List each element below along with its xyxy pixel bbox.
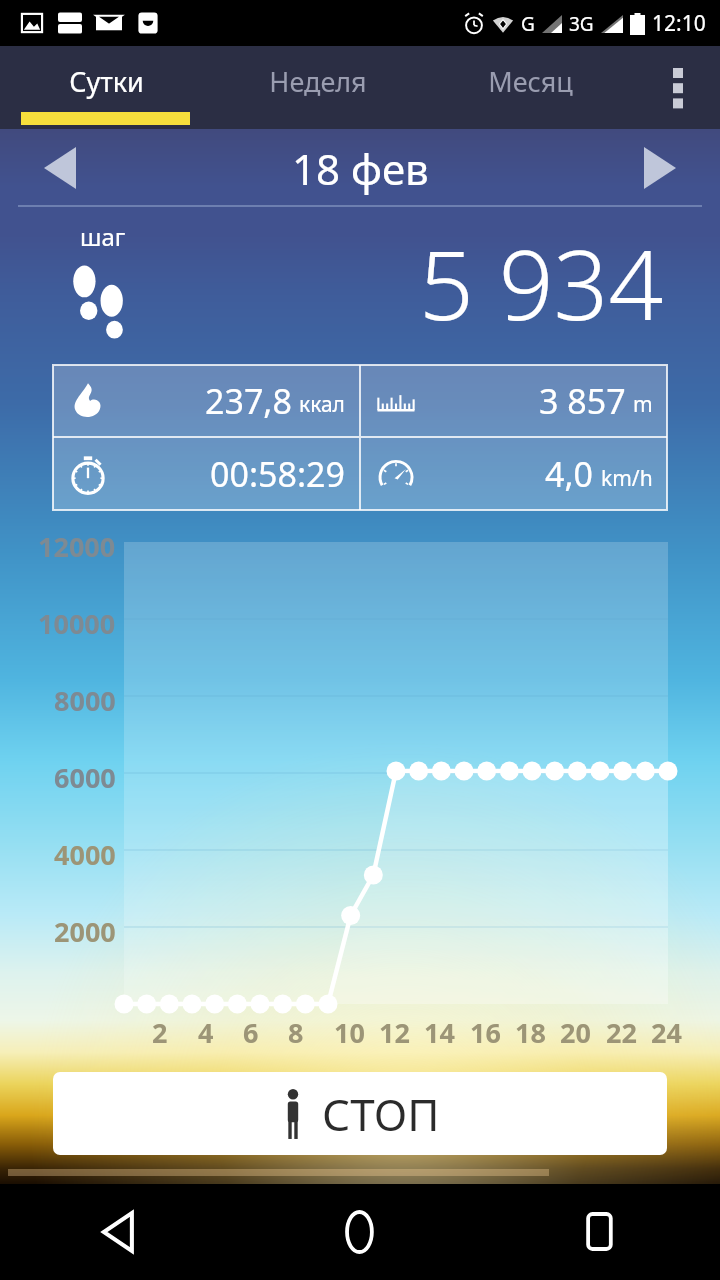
button[interactable]: СТОП xyxy=(53,1072,667,1155)
staticText: 237,8 xyxy=(205,378,292,424)
button[interactable]: More options xyxy=(636,46,720,129)
staticText: ккал xyxy=(299,390,345,419)
staticText: 10 xyxy=(334,1014,365,1051)
button[interactable]: Home xyxy=(240,1184,480,1280)
staticText: 12:10 xyxy=(652,9,706,38)
staticText: 22 xyxy=(606,1014,637,1051)
staticText: 18 xyxy=(515,1014,546,1051)
button[interactable]: Back xyxy=(0,1184,240,1280)
button[interactable]: 237,8 xyxy=(53,365,359,436)
staticText: 8000 xyxy=(54,682,116,719)
staticText: m xyxy=(633,390,653,419)
staticText: G xyxy=(521,11,535,37)
staticText: Неделя xyxy=(269,63,367,100)
staticText: 4000 xyxy=(54,836,116,873)
staticText: Сутки xyxy=(69,63,144,100)
staticText: 4 xyxy=(198,1014,214,1051)
button[interactable]: Next day xyxy=(630,138,690,198)
staticText: 10000 xyxy=(38,605,116,642)
button[interactable]: Previous day xyxy=(30,138,90,198)
staticText: 6000 xyxy=(54,759,116,796)
staticText: 6 xyxy=(243,1014,259,1051)
staticText: 16 xyxy=(470,1014,501,1051)
staticText: 2000 xyxy=(54,913,116,950)
staticText: 24 xyxy=(651,1014,682,1051)
button[interactable]: 00:58:29 xyxy=(53,438,359,510)
staticText: Месяц xyxy=(488,63,573,100)
button[interactable]: 3 857 xyxy=(361,365,667,436)
staticText: 14 xyxy=(424,1014,455,1051)
staticText: 3 857 xyxy=(539,378,626,424)
staticText: СТОП xyxy=(322,1084,440,1144)
button[interactable]: Recents xyxy=(480,1184,720,1280)
staticText: шаг xyxy=(80,220,126,253)
staticText: 8 xyxy=(288,1014,304,1051)
staticText: 18 фев xyxy=(292,140,429,197)
button[interactable]: Неделя xyxy=(212,46,424,129)
staticText: 00:58:29 xyxy=(210,451,345,497)
staticText: km/h xyxy=(601,464,653,493)
button[interactable]: Месяц xyxy=(424,46,636,129)
staticText: 4,0 xyxy=(545,451,594,497)
staticText: 5 934 xyxy=(419,217,664,348)
staticText: 2 xyxy=(152,1014,168,1051)
staticText: 12000 xyxy=(38,528,116,565)
button[interactable]: 4,0 xyxy=(361,438,667,510)
staticText: 12 xyxy=(379,1014,410,1051)
staticText: 20 xyxy=(560,1014,591,1051)
staticText: 3G xyxy=(569,11,594,37)
button[interactable]: Сутки xyxy=(0,46,212,129)
